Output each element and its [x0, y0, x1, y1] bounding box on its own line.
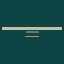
button[interactable]: Details	[2, 31, 62, 33]
button[interactable]: Action	[25, 36, 39, 37]
